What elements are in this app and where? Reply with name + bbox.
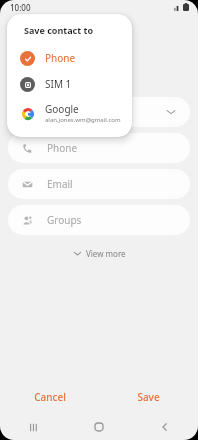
- button[interactable]: Expand account selector: [8, 97, 190, 127]
- button[interactable]: View more: [67, 245, 132, 262]
- button[interactable]: Save: [99, 380, 198, 414]
- staticText: Phone: [45, 51, 76, 65]
- staticText: Google: [45, 102, 79, 116]
- button[interactable]: Back: [132, 414, 198, 440]
- button[interactable]: Groups: [8, 205, 190, 235]
- button[interactable]: Recents: [0, 414, 66, 440]
- staticText: Save contact to: [24, 24, 94, 36]
- button[interactable]: Email: [8, 169, 190, 199]
- button[interactable]: Cancel: [0, 380, 99, 414]
- staticText: SIM 1: [45, 77, 72, 91]
- button[interactable]: Phone: [7, 45, 132, 71]
- staticText: Phone: [47, 141, 78, 155]
- staticText: Save: [137, 390, 160, 404]
- staticText: 10:00: [10, 2, 31, 13]
- staticText: View more: [86, 248, 126, 259]
- staticText: alan.jones.wm@gmail.com: [45, 116, 121, 124]
- other: Expand account selector: [165, 106, 177, 118]
- button[interactable]: Home: [66, 414, 132, 440]
- button[interactable]: Google: [7, 97, 132, 129]
- staticText: Groups: [47, 213, 82, 227]
- button[interactable]: SIM 1: [7, 71, 132, 97]
- staticText: Email: [47, 177, 73, 191]
- staticText: Cancel: [34, 390, 66, 404]
- button[interactable]: Phone: [8, 133, 190, 163]
